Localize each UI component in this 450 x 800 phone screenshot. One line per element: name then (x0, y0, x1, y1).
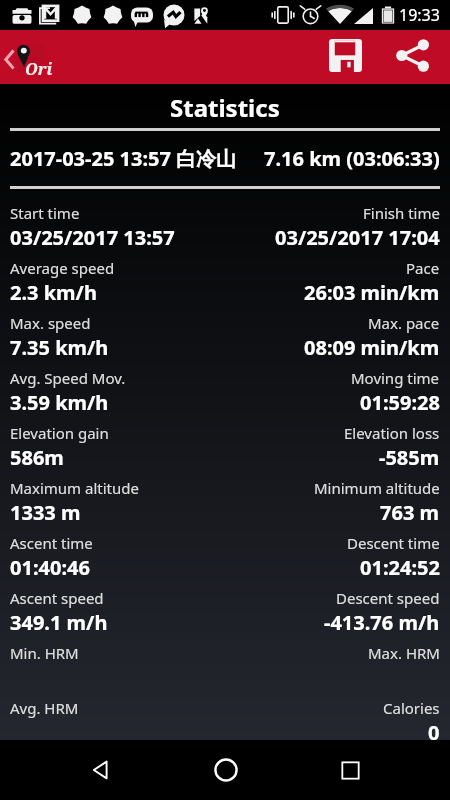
staticText: Minimum altitude (314, 478, 440, 498)
staticText: Max. HRM (368, 643, 440, 663)
button[interactable]: Save (314, 30, 382, 84)
staticText: Descent time (347, 533, 440, 553)
button[interactable]: Average speed (0, 254, 450, 309)
button[interactable]: Start time (0, 199, 450, 254)
button[interactable]: Home (163, 740, 288, 800)
staticText: Descent speed (336, 588, 440, 608)
button[interactable]: Back (38, 740, 163, 800)
staticText: 3.59 km/h (10, 389, 109, 416)
staticText: Calories (383, 698, 440, 718)
staticText: Moving time (351, 368, 440, 388)
staticText: Ori (25, 58, 53, 80)
button[interactable]: Recent apps (288, 740, 413, 800)
button[interactable]: Navigate up (0, 30, 58, 84)
staticText: 2017-03-25 13:57 白冷山 (10, 145, 237, 172)
staticText: 349.1 m/h (10, 609, 108, 636)
staticText: Elevation gain (10, 423, 109, 443)
staticText: 586m (10, 444, 64, 471)
staticText: Elevation loss (344, 423, 440, 443)
staticText: 2.3 km/h (10, 279, 97, 306)
staticText: Average speed (10, 258, 115, 278)
staticText: Pace (406, 258, 440, 278)
staticText: 1333 m (10, 499, 81, 526)
staticText: Ascent time (10, 533, 93, 553)
button[interactable]: Ascent time (0, 529, 450, 584)
staticText: Statistics (170, 91, 280, 124)
staticText: Max. pace (368, 313, 440, 333)
staticText: -585m (379, 444, 440, 471)
button[interactable]: Elevation gain (0, 419, 450, 474)
staticText: Avg. HRM (10, 698, 79, 718)
staticText: Max. speed (10, 313, 91, 333)
button[interactable]: Min. HRM (0, 639, 450, 694)
staticText: 26:03 min/km (304, 279, 440, 306)
staticText: 0 (428, 719, 440, 740)
button[interactable]: Ascent speed (0, 584, 450, 639)
staticText: 01:24:52 (360, 554, 440, 581)
staticText: 01:59:28 (360, 389, 440, 416)
button[interactable]: Avg. HRM (0, 694, 450, 740)
staticText: 7.35 km/h (10, 334, 109, 361)
staticText: -413.76 m/h (324, 609, 440, 636)
button[interactable]: Avg. Speed Mov. (0, 364, 450, 419)
staticText: 763 m (380, 499, 440, 526)
staticText: 19:33 (399, 4, 440, 26)
staticText: 03/25/2017 13:57 (10, 224, 175, 251)
staticText: Finish time (363, 203, 440, 223)
button[interactable]: Max. speed (0, 309, 450, 364)
staticText: Min. HRM (10, 643, 79, 663)
staticText: Ascent speed (10, 588, 104, 608)
button[interactable]: Maximum altitude (0, 474, 450, 529)
staticText: Maximum altitude (10, 478, 139, 498)
button[interactable]: Share (382, 30, 450, 84)
staticText: 08:09 min/km (304, 334, 440, 361)
staticText: 03/25/2017 17:04 (275, 224, 440, 251)
staticText: 7.16 km (03:06:33) (264, 145, 440, 172)
staticText: 01:40:46 (10, 554, 90, 581)
staticText: Start time (10, 203, 80, 223)
staticText: Avg. Speed Mov. (10, 368, 126, 388)
